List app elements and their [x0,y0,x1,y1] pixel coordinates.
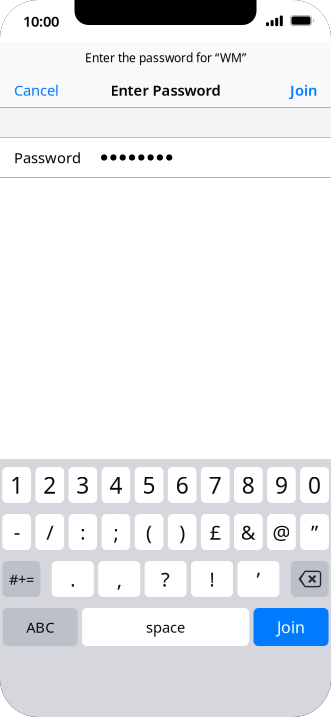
staticText: Join [290,80,317,100]
staticText: ’ [256,566,260,592]
button[interactable]: ) [168,514,196,550]
button[interactable]: ” [300,514,329,550]
button[interactable]: Join [253,608,328,646]
staticText: @ [272,519,290,545]
staticText: 4 [109,470,122,500]
button[interactable]: 3 [68,467,97,503]
button[interactable]: 9 [267,467,296,503]
staticText: Cancel [14,80,59,100]
staticText: & [241,519,256,545]
staticText: 6 [176,470,189,500]
button[interactable]: 0 [300,467,329,503]
button[interactable]: £ [201,514,230,550]
staticText: 3 [76,470,89,500]
staticText: ABC [26,617,54,637]
staticText: 7 [209,470,222,500]
button[interactable]: - [2,514,31,550]
button[interactable]: & [234,514,263,550]
staticText: Enter the password for “WM” [85,49,246,65]
staticText: Password [14,148,81,167]
staticText: 5 [143,470,156,500]
staticText: ( [146,519,152,545]
button[interactable]: Join [276,73,331,107]
button[interactable]: 1 [2,467,31,503]
button[interactable]: , [98,561,140,597]
staticText: space [146,617,185,637]
staticText: #+= [9,569,34,589]
button[interactable]: Delete [291,561,329,597]
button[interactable]: ; [102,514,130,550]
staticText: Enter Password [110,80,220,100]
button[interactable]: / [35,514,64,550]
staticText: ) [179,519,185,545]
staticText: ; [113,519,118,545]
button[interactable]: 8 [234,467,263,503]
staticText: 10:00 [23,11,59,31]
staticText: : [80,519,85,545]
button[interactable]: @ [267,514,296,550]
button[interactable]: 6 [168,467,196,503]
button[interactable]: ABC [3,608,78,646]
button[interactable]: ! [191,561,233,597]
button[interactable]: ’ [237,561,279,597]
staticText: 2 [43,470,56,500]
button[interactable]: 7 [201,467,230,503]
button[interactable]: 5 [135,467,163,503]
staticText: / [46,519,53,545]
staticText: 0 [308,470,321,500]
staticText: . [70,566,75,592]
staticText: ” [311,519,318,545]
button[interactable]: 4 [102,467,130,503]
button[interactable]: . [52,561,94,597]
staticText: 1 [10,470,23,500]
button[interactable]: : [68,514,97,550]
staticText: Join [277,616,305,638]
staticText: 9 [275,470,288,500]
button[interactable]: Cancel [0,73,73,107]
staticText: 8 [242,470,255,500]
button[interactable]: space [82,608,249,646]
staticText: - [14,519,20,545]
staticText: £ [210,519,221,545]
staticText: ? [161,566,170,592]
button[interactable]: ( [135,514,163,550]
button[interactable]: #+= [2,561,40,597]
button[interactable]: 2 [35,467,64,503]
button[interactable]: ? [145,561,187,597]
staticText: , [117,566,122,592]
staticText: ! [209,566,214,592]
